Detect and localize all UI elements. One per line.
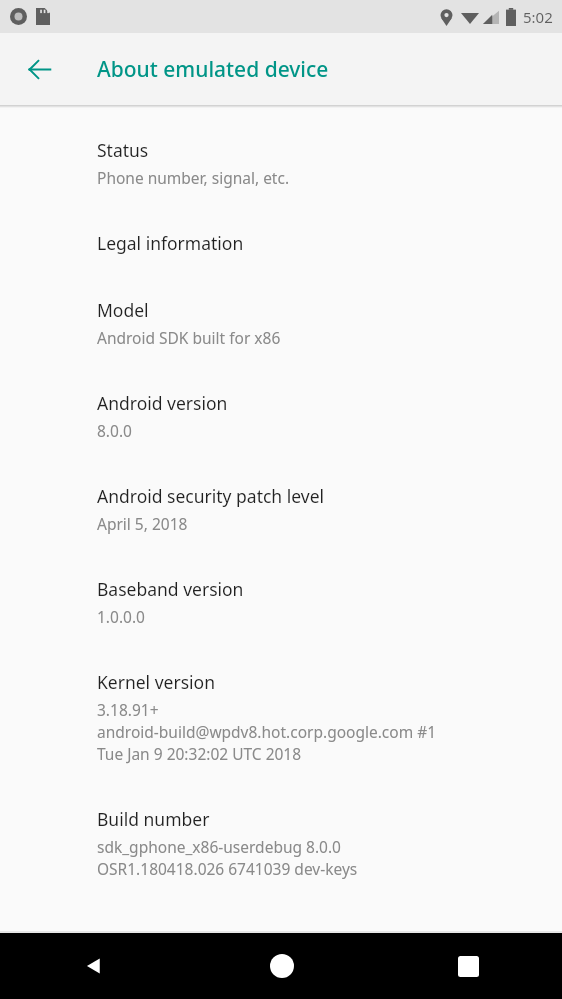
staticText: About emulated device	[97, 55, 329, 84]
staticText: Model	[97, 298, 149, 322]
staticText: Legal information	[97, 231, 244, 255]
staticText: 5:02	[523, 7, 553, 27]
button[interactable]: Android version	[0, 383, 562, 449]
staticText: Status	[97, 138, 149, 162]
button[interactable]: Kernel version	[0, 662, 562, 772]
staticText: April 5, 2018	[97, 513, 188, 534]
button[interactable]: Status	[0, 130, 562, 196]
staticText: 8.0.0	[97, 420, 132, 441]
staticText: Phone number, signal, etc.	[97, 167, 290, 188]
staticText: android-build@wpdv8.hot.corp.google.com …	[97, 721, 437, 742]
button[interactable]: Model	[0, 290, 562, 356]
staticText: Android version	[97, 391, 228, 415]
staticText: Tue Jan 9 20:32:02 UTC 2018	[97, 743, 302, 764]
button[interactable]: Home	[188, 933, 375, 999]
button[interactable]: Baseband version	[0, 569, 562, 635]
button[interactable]: Android security patch level	[0, 476, 562, 542]
staticText: Android SDK built for x86	[97, 327, 281, 348]
staticText: 1.0.0.0	[97, 606, 145, 627]
staticText: Build number	[97, 807, 210, 831]
button[interactable]: Build number	[0, 799, 562, 887]
button[interactable]: Navigate up	[15, 45, 63, 93]
staticText: sdk_gphone_x86-userdebug 8.0.0	[97, 836, 341, 857]
button[interactable]: Recent apps	[375, 933, 562, 999]
staticText: Baseband version	[97, 577, 244, 601]
staticText: Kernel version	[97, 670, 215, 694]
button[interactable]: Legal information	[0, 223, 562, 263]
staticText: OSR1.180418.026 6741039 dev-keys	[97, 858, 358, 879]
button[interactable]: Back	[0, 933, 188, 999]
staticText: 3.18.91+	[97, 699, 159, 720]
staticText: Android security patch level	[97, 484, 325, 508]
